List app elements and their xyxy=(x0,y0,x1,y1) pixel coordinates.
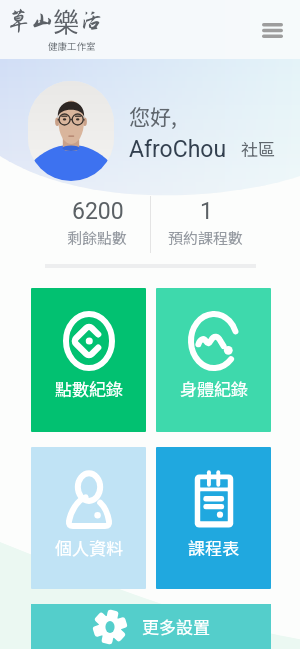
staticText: 身體紀錄 xyxy=(180,376,248,401)
button[interactable]: 點數紀錄 xyxy=(31,288,146,432)
staticText: 1 xyxy=(200,198,213,225)
staticText: 健康工作室 xyxy=(48,39,96,53)
staticText: 您好, xyxy=(129,101,177,131)
staticText: 預約課程數 xyxy=(168,227,244,249)
staticText: 課程表 xyxy=(188,535,239,560)
staticText: 更多設置 xyxy=(142,614,210,639)
button[interactable]: 課程表 xyxy=(156,447,271,589)
button[interactable]: 更多設置 xyxy=(31,604,271,649)
button[interactable]: 個人資料 xyxy=(31,447,146,589)
button[interactable]: 身體紀錄 xyxy=(156,288,271,432)
staticText: AfroChou xyxy=(129,136,227,163)
staticText: 個人資料 xyxy=(55,535,123,560)
button[interactable]: 1 xyxy=(151,198,261,249)
staticText: 草山樂活 xyxy=(7,6,104,39)
button[interactable]: Menu xyxy=(254,12,290,48)
staticText: 點數紀錄 xyxy=(55,376,123,401)
button[interactable]: 6200 xyxy=(42,198,152,249)
staticText: 剩餘點數 xyxy=(67,227,128,249)
staticText: 6200 xyxy=(72,198,124,225)
staticText: 社區 xyxy=(241,136,275,161)
